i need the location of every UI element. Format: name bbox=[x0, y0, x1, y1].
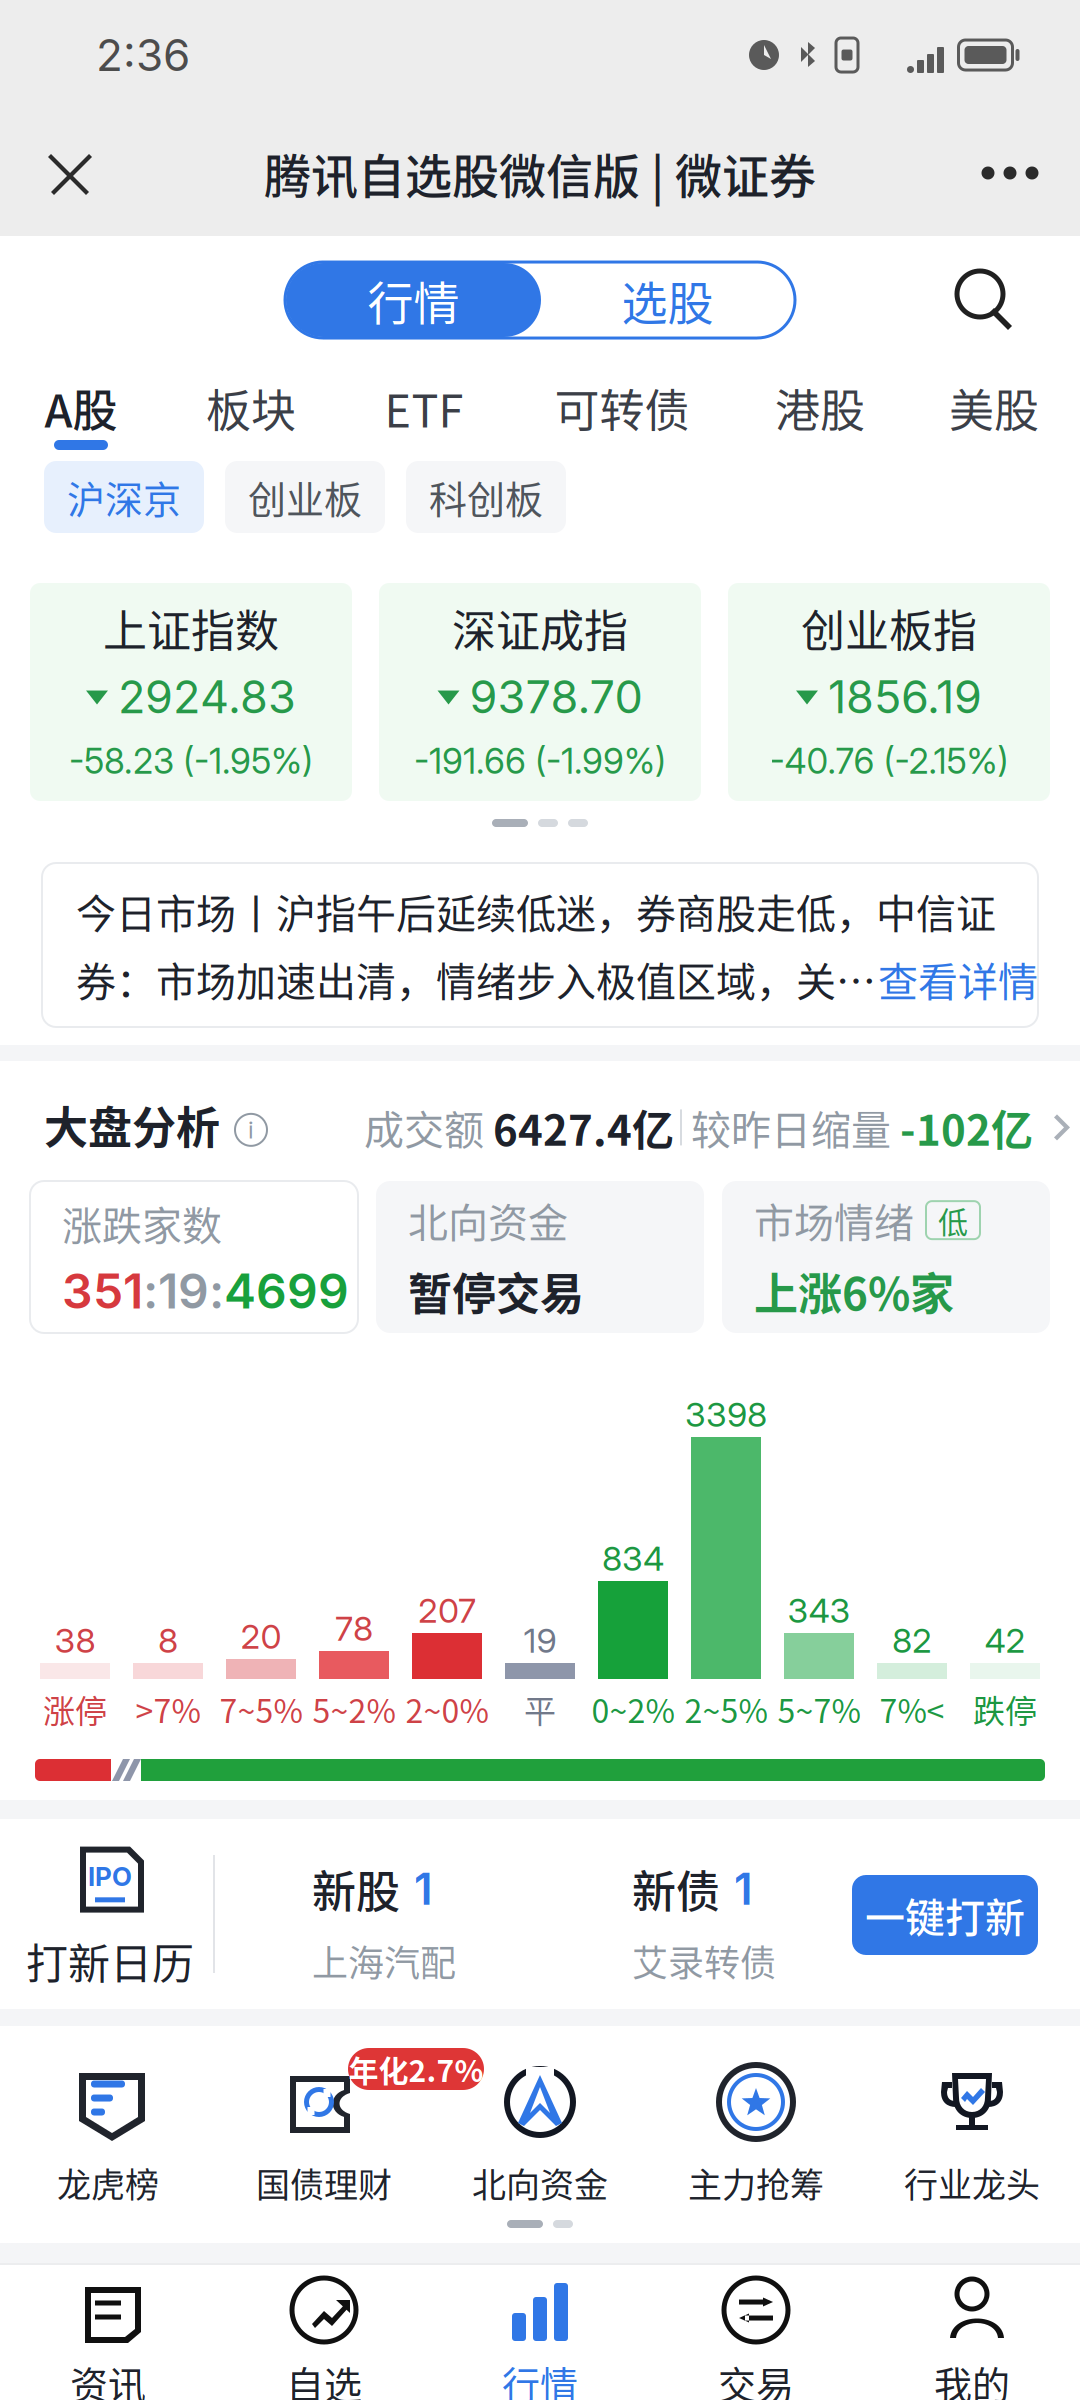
button[interactable]: 北向资金 bbox=[376, 1181, 704, 1333]
staticText: 跌停 bbox=[973, 1686, 1037, 1732]
staticText: 4699 bbox=[224, 1262, 349, 1320]
staticText: 2~5% bbox=[684, 1686, 767, 1732]
staticText: 查看详情 bbox=[878, 950, 1038, 1008]
staticText: ETF bbox=[384, 375, 463, 441]
staticText: 1856.19 bbox=[828, 670, 982, 724]
staticText: A股 bbox=[44, 375, 117, 441]
staticText: 2~0% bbox=[405, 1686, 488, 1732]
staticText: 上海汽配 bbox=[312, 1935, 456, 1987]
staticText: 207 bbox=[418, 1590, 476, 1631]
button[interactable]: 行业龙头 bbox=[864, 2046, 1080, 2206]
button[interactable]: 港股 bbox=[730, 368, 910, 458]
staticText: 42 bbox=[984, 1620, 1025, 1661]
staticText: 7~5% bbox=[219, 1686, 302, 1732]
button[interactable]: 自选 bbox=[216, 2265, 432, 2400]
staticText: 今日市场丨沪指午后延续低迷，券商股走低，中信证 bbox=[76, 882, 996, 940]
staticText: 343 bbox=[787, 1590, 850, 1631]
staticText: >7% bbox=[135, 1686, 200, 1732]
staticText: 美股 bbox=[949, 375, 1039, 441]
staticText: 3398 bbox=[685, 1394, 767, 1435]
button[interactable]: Close bbox=[0, 110, 140, 236]
staticText: 351 bbox=[62, 1262, 143, 1320]
button[interactable]: 新股 bbox=[312, 1857, 512, 2017]
button[interactable]: ETF bbox=[334, 368, 514, 458]
button[interactable]: 沪深京 bbox=[44, 461, 204, 533]
staticText: 科创板 bbox=[429, 469, 543, 524]
staticText: 新债 bbox=[632, 1857, 720, 1921]
staticText: 6427.4亿 bbox=[493, 1097, 674, 1158]
staticText: 选股 bbox=[621, 267, 713, 333]
staticText: 行业龙头 bbox=[904, 2158, 1040, 2207]
staticText: 涨停 bbox=[43, 1686, 107, 1732]
button[interactable]: 主力抢筹 bbox=[648, 2046, 864, 2206]
staticText: : bbox=[209, 1262, 224, 1320]
button[interactable]: 交易 bbox=[648, 2265, 864, 2400]
button[interactable]: 涨跌家数 bbox=[30, 1181, 358, 1333]
staticText: 腾讯自选股微信版 | 微证券 bbox=[264, 139, 816, 207]
staticText: 成交额 bbox=[364, 1098, 493, 1156]
button[interactable]: 科创板 bbox=[406, 461, 566, 533]
button[interactable]: 市场情绪 bbox=[722, 1181, 1050, 1333]
staticText: 涨跌家数 bbox=[62, 1194, 222, 1252]
staticText: 行情 bbox=[367, 267, 459, 333]
button[interactable]: A股 bbox=[0, 368, 171, 458]
staticText: 国债理财 bbox=[256, 2158, 392, 2207]
staticText: 5~7% bbox=[777, 1686, 860, 1732]
staticText: -191.66 (-1.99%) bbox=[414, 740, 666, 782]
button[interactable]: 板块 bbox=[161, 368, 341, 458]
staticText: 2:36 bbox=[96, 28, 190, 82]
button[interactable]: 上证指数 bbox=[30, 583, 352, 801]
button[interactable]: 行情 bbox=[286, 263, 541, 337]
staticText: 一键打新 bbox=[865, 1886, 1025, 1944]
button[interactable]: IPO bbox=[0, 1837, 220, 1997]
staticText: -102亿 bbox=[900, 1097, 1033, 1158]
button[interactable]: 新债 bbox=[632, 1857, 832, 2017]
staticText: 自选 bbox=[286, 2355, 362, 2400]
staticText: 新股 bbox=[312, 1857, 400, 1921]
staticText: 主力抢筹 bbox=[688, 2158, 824, 2207]
staticText: 板块 bbox=[206, 375, 296, 441]
staticText: 1 bbox=[414, 1862, 433, 1915]
button[interactable]: 国债理财 bbox=[216, 2046, 432, 2206]
staticText: 创业板指 bbox=[801, 596, 977, 660]
staticText: 834 bbox=[602, 1538, 664, 1579]
staticText: 1 bbox=[734, 1862, 753, 1915]
staticText: 20 bbox=[240, 1616, 281, 1657]
staticText: 艾录转债 bbox=[632, 1935, 776, 1987]
button[interactable]: More bbox=[940, 110, 1080, 236]
button[interactable]: 一键打新 bbox=[852, 1875, 1038, 1955]
staticText: 沪深京 bbox=[67, 469, 181, 524]
staticText: 19 bbox=[158, 1262, 209, 1320]
button[interactable]: 深证成指 bbox=[379, 583, 701, 801]
button[interactable]: 美股 bbox=[904, 368, 1080, 458]
button[interactable]: 创业板 bbox=[225, 461, 385, 533]
staticText: 北向资金 bbox=[408, 1191, 568, 1249]
button[interactable]: 今日市场丨沪指午后延续低迷，券商股走低，中信证 bbox=[42, 863, 1038, 1027]
button[interactable]: 行情 bbox=[432, 2265, 648, 2400]
staticText: 可转债 bbox=[554, 375, 689, 441]
button[interactable]: 北向资金 bbox=[432, 2046, 648, 2206]
staticText: IPO bbox=[88, 1861, 132, 1892]
button[interactable]: 龙虎榜 bbox=[0, 2046, 216, 2206]
staticText: 78 bbox=[335, 1608, 373, 1649]
button[interactable]: Search bbox=[930, 244, 1040, 354]
staticText: : bbox=[143, 1262, 158, 1320]
staticText: 我的 bbox=[934, 2355, 1010, 2400]
staticText: 82 bbox=[892, 1620, 932, 1661]
button[interactable]: 可转债 bbox=[532, 368, 712, 458]
button[interactable]: 选股 bbox=[541, 263, 794, 337]
staticText: 市场情绪 bbox=[754, 1191, 914, 1249]
staticText: 7%< bbox=[879, 1686, 944, 1732]
staticText: 2924.83 bbox=[118, 670, 296, 724]
staticText: 5~2% bbox=[312, 1686, 395, 1732]
button[interactable]: 我的 bbox=[864, 2265, 1080, 2400]
staticText: 上证指数 bbox=[103, 596, 279, 660]
staticText: 创业板 bbox=[248, 469, 362, 524]
staticText: 暂停交易 bbox=[408, 1259, 584, 1323]
button[interactable]: 创业板指 bbox=[728, 583, 1050, 801]
staticText: 港股 bbox=[775, 375, 865, 441]
staticText: 大盘分析 bbox=[44, 1093, 220, 1157]
staticText: 19 bbox=[523, 1620, 556, 1661]
button[interactable]: 资讯 bbox=[0, 2265, 216, 2400]
